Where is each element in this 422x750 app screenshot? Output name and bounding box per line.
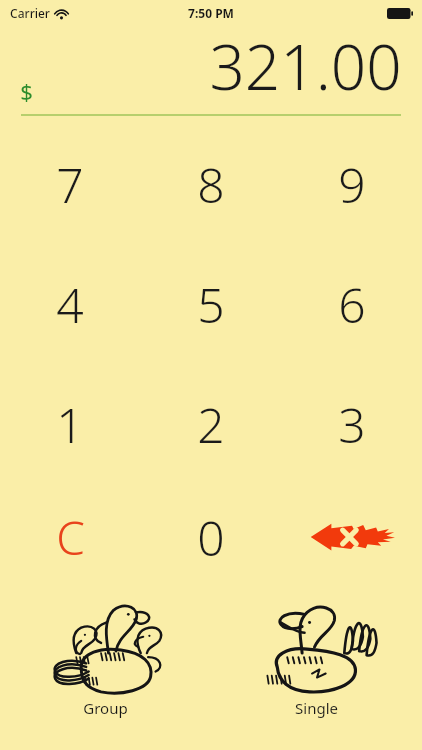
staticText: 4 <box>56 272 84 337</box>
staticText: 321.00 <box>209 24 402 108</box>
staticText: Group <box>83 698 128 718</box>
staticText: 9 <box>338 152 366 217</box>
staticText: 3 <box>338 392 366 457</box>
button[interactable]: 3 <box>281 364 422 484</box>
button[interactable]: 7 <box>0 124 140 244</box>
staticText: Carrier <box>10 5 50 21</box>
button[interactable]: C <box>0 484 140 590</box>
button[interactable]: 5 <box>140 244 281 364</box>
staticText: Single <box>295 698 338 718</box>
button[interactable]: 6 <box>281 244 422 364</box>
button[interactable]: Delete <box>281 484 422 590</box>
button[interactable]: 1 <box>0 364 140 484</box>
button[interactable]: 8 <box>140 124 281 244</box>
staticText: C <box>56 506 85 569</box>
staticText: 0 <box>197 505 225 570</box>
button[interactable]: 9 <box>281 124 422 244</box>
staticText: 2 <box>197 392 225 457</box>
staticText: 6 <box>338 272 366 337</box>
button[interactable]: 0 <box>140 484 281 590</box>
staticText: 5 <box>197 272 225 337</box>
button[interactable]: 4 <box>0 244 140 364</box>
staticText: 8 <box>197 152 225 217</box>
staticText: 7:50 PM <box>188 5 234 21</box>
staticText: 1 <box>56 392 84 457</box>
button[interactable]: 2 <box>140 364 281 484</box>
button[interactable]: Single <box>211 596 422 750</box>
button[interactable]: Group <box>0 596 211 750</box>
staticText: 7 <box>56 152 84 217</box>
staticText: $ <box>20 76 33 106</box>
